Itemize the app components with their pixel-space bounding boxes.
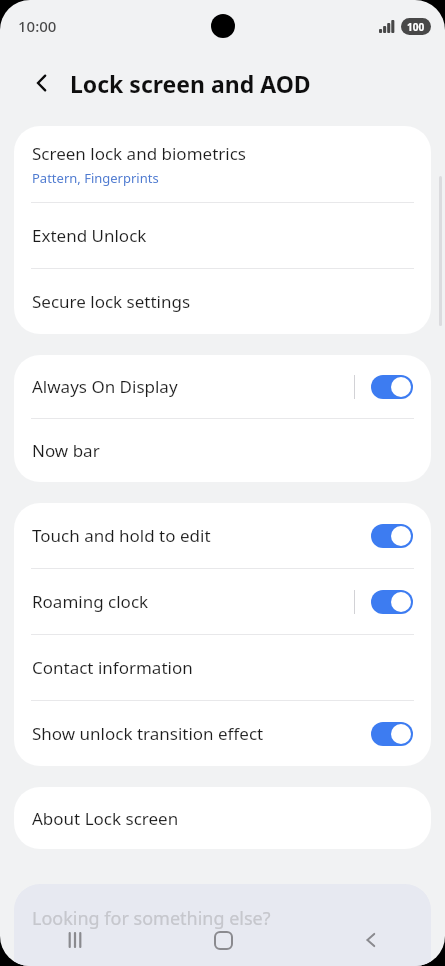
button[interactable]: Roaming clock — [14, 569, 431, 634]
button[interactable]: About Lock screen — [14, 787, 431, 849]
staticText: Now bar — [32, 439, 100, 462]
staticText: 100 — [407, 20, 425, 34]
staticText: Touch and hold to edit — [32, 524, 211, 547]
staticText: Extend Unlock — [32, 224, 147, 247]
button[interactable]: Secure lock settings — [14, 269, 431, 334]
staticText: 10:00 — [18, 16, 57, 36]
staticText: Lock screen and AOD — [70, 68, 311, 99]
button[interactable]: Contact information — [14, 635, 431, 700]
button[interactable]: Now bar — [14, 419, 431, 482]
staticText: Pattern, Fingerprints — [32, 169, 159, 187]
button[interactable]: Back — [297, 914, 445, 966]
button[interactable]: Home — [149, 914, 297, 966]
staticText: About Lock screen — [32, 807, 179, 830]
button[interactable]: Toggle on — [371, 375, 413, 399]
button[interactable]: Back — [22, 63, 62, 103]
staticText: Show unlock transition effect — [32, 722, 264, 745]
staticText: Looking for something else? — [32, 906, 271, 931]
button[interactable]: Recents — [0, 914, 149, 966]
button[interactable]: Toggle on — [371, 722, 413, 746]
button[interactable]: Touch and hold to edit — [14, 503, 431, 568]
button[interactable]: Screen lock and biometrics — [14, 126, 431, 202]
staticText: Always On Display — [32, 375, 178, 398]
staticText: Secure lock settings — [32, 290, 191, 313]
button[interactable]: Toggle on — [371, 524, 413, 548]
button[interactable]: Extend Unlock — [14, 203, 431, 268]
staticText: Roaming clock — [32, 590, 149, 613]
button[interactable]: Always On Display — [14, 355, 431, 418]
staticText: Screen lock and biometrics — [32, 142, 246, 165]
button[interactable]: Toggle on — [371, 590, 413, 614]
button[interactable]: Looking for something else? — [14, 884, 431, 966]
staticText: Contact information — [32, 656, 193, 679]
button[interactable]: Show unlock transition effect — [14, 701, 431, 766]
